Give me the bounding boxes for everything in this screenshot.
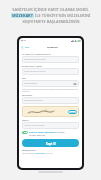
staticText: İLE TÜRKİYE'NİN MÜZELERİNİ [34, 13, 91, 18]
staticText: Şifrenizi tekrar giriniz [24, 99, 43, 102]
staticText: Şifre Tekrarı [22, 94, 33, 96]
staticText: E-posta adresinizi giriniz [24, 70, 46, 73]
staticText: Üyelik ve Hizmet Sözleşmesi [29, 131, 55, 134]
staticText: giriş yapmak [36, 152, 46, 154]
button[interactable]: E-posta adresinizi giriniz [22, 68, 79, 75]
other: Accept membership agreement [22, 131, 28, 134]
button[interactable]: Back [21, 46, 30, 49]
button[interactable]: Captcha kodunu giriniz [22, 122, 79, 129]
staticText: Kimlik numaranızı giriniz [24, 58, 46, 61]
staticText: Yenile [70, 111, 75, 113]
button[interactable]: Şifrenizi tekrar giriniz [22, 97, 79, 104]
staticText: için tıkla. [46, 152, 53, 154]
other: Back [21, 46, 24, 49]
button[interactable]: Kayıt Ol [22, 139, 79, 147]
staticText: Şifre [22, 77, 26, 79]
staticText: Şifreniz en az 8 karakter olmalı, en az … [22, 88, 79, 92]
staticText: Var olan hesabınla [22, 152, 36, 154]
staticText: Kayıt Ol [46, 142, 56, 145]
staticText: Hesabın mı Var? [22, 149, 36, 151]
staticText: MÜZEKART [12, 13, 33, 18]
staticText: KEŞFETMEYE BAŞLAYABİLİRSİN [22, 19, 80, 24]
staticText: 'ni okudum [55, 131, 65, 134]
button[interactable]: Yenile [68, 110, 77, 114]
staticText: Müzekart [47, 46, 58, 49]
staticText: E-posta Adresi / Telefon [22, 65, 43, 67]
button[interactable]: Accept membership agreement [22, 131, 79, 137]
other: Show password [73, 82, 77, 86]
staticText: T.C. Kimlik No / Yabancı Kimlik No [22, 53, 51, 55]
staticText: Captcha [22, 119, 29, 121]
staticText: Şifrenizi giriniz [24, 82, 37, 85]
button[interactable]: Şifrenizi giriniz [22, 80, 79, 87]
staticText: 09:41 [21, 39, 26, 42]
staticText: ve kabul ediyorum. [29, 134, 46, 137]
staticText: Geri [25, 46, 30, 49]
staticText: SANİYELER İÇİNDE KAYIT OLARAK MOBİL [12, 7, 89, 12]
button[interactable]: Kimlik numaranızı giriniz [22, 56, 79, 63]
staticText: Captcha kodunu giriniz [24, 124, 45, 127]
